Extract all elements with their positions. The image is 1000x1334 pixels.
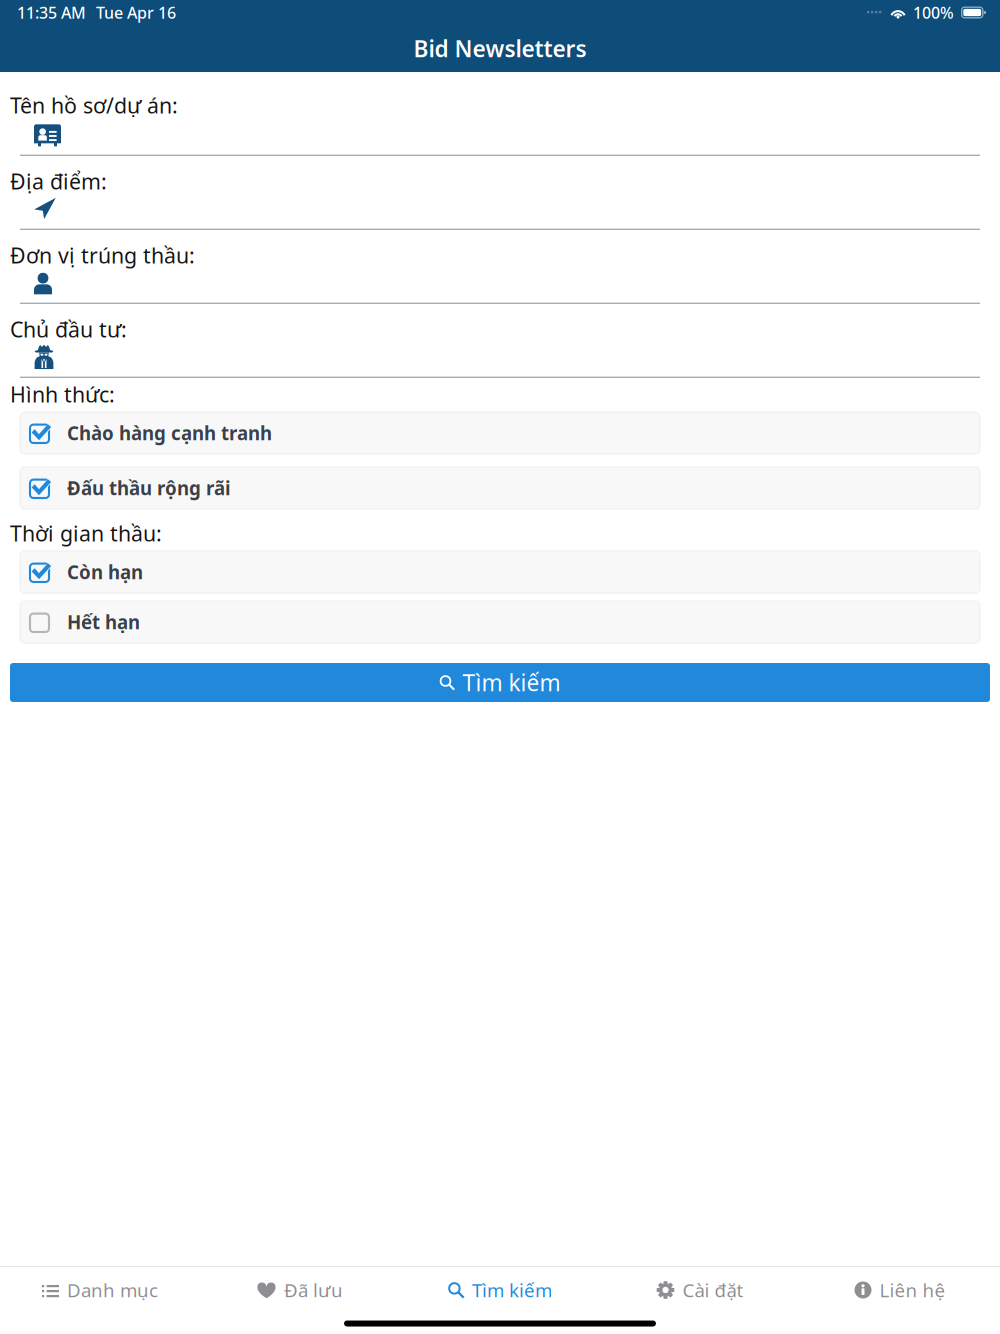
staticText: 100% bbox=[913, 2, 954, 23]
staticText: Đơn vị trúng thầu: bbox=[10, 241, 195, 269]
button[interactable]: Đã lưu bbox=[200, 1267, 400, 1313]
staticText: Hết hạn bbox=[67, 610, 140, 634]
staticText: Tue Apr 16 bbox=[96, 2, 176, 23]
staticText: Đấu thầu rộng rãi bbox=[67, 476, 231, 500]
staticText: Chào hàng cạnh tranh bbox=[67, 421, 272, 445]
staticText: Cài đặt bbox=[682, 1278, 743, 1302]
staticText: Thời gian thầu: bbox=[10, 519, 162, 547]
staticText: Tìm kiếm bbox=[472, 1278, 552, 1302]
button[interactable]: Còn hạn bbox=[20, 551, 980, 593]
staticText: Hình thức: bbox=[10, 380, 115, 408]
staticText: 11:35 AM bbox=[17, 2, 86, 23]
staticText: Tìm kiếm bbox=[462, 667, 560, 697]
staticText: Đã lưu bbox=[284, 1278, 343, 1302]
staticText: Bid Newsletters bbox=[413, 33, 586, 63]
staticText: Liên hệ bbox=[879, 1278, 945, 1302]
button[interactable]: Liên hệ bbox=[800, 1267, 1000, 1313]
button[interactable]: Danh mục bbox=[0, 1267, 200, 1313]
staticText: Chủ đầu tư: bbox=[10, 315, 127, 343]
button[interactable]: Tìm kiếm bbox=[10, 663, 990, 702]
button[interactable]: Đấu thầu rộng rãi bbox=[20, 467, 980, 509]
button[interactable]: Tìm kiếm bbox=[400, 1267, 600, 1313]
staticText: Danh mục bbox=[67, 1278, 158, 1302]
button[interactable]: Chào hàng cạnh tranh bbox=[20, 412, 980, 454]
button[interactable]: Hết hạn bbox=[20, 601, 980, 643]
staticText: Địa điểm: bbox=[10, 167, 107, 195]
staticText: Còn hạn bbox=[67, 560, 143, 584]
button[interactable]: Cài đặt bbox=[600, 1267, 800, 1313]
staticText: Tên hồ sơ/dự án: bbox=[10, 91, 178, 119]
